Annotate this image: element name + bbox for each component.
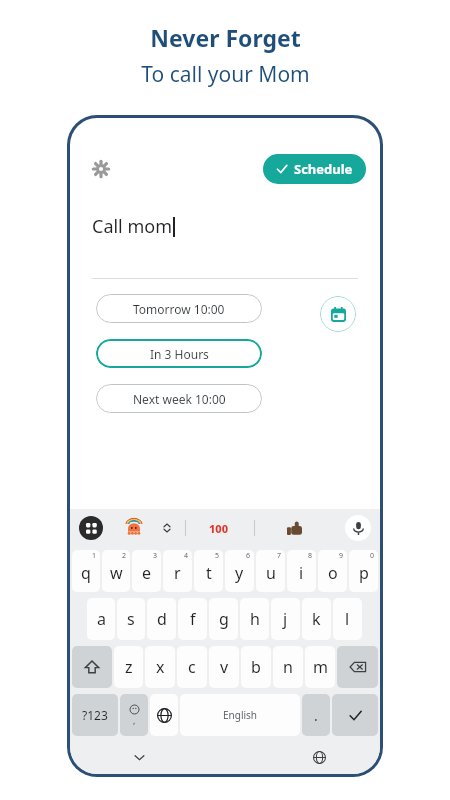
button[interactable]: a	[87, 598, 115, 640]
staticText: z	[125, 656, 133, 678]
staticText: a	[97, 608, 106, 630]
button[interactable]: ?123	[72, 694, 118, 736]
staticText: Tomorrow 10:00	[133, 301, 225, 317]
staticText: 1	[92, 551, 97, 561]
staticText: 3	[153, 551, 158, 561]
button[interactable]: h	[240, 598, 269, 640]
staticText: 6	[246, 551, 251, 561]
staticText: 0	[370, 551, 375, 561]
staticText: 8	[308, 551, 313, 561]
button[interactable]: 7	[256, 550, 285, 592]
staticText: c	[188, 656, 196, 678]
button[interactable]: Thumbs up emoji	[284, 518, 304, 538]
staticText: r	[174, 562, 181, 584]
button[interactable]: Emoji and comma	[120, 694, 148, 736]
button[interactable]: .	[302, 694, 330, 736]
staticText: Schedule	[294, 160, 353, 178]
button[interactable]: m	[305, 646, 335, 688]
button[interactable]: x	[145, 646, 175, 688]
button[interactable]: 2	[102, 550, 130, 592]
button[interactable]: Voice input	[345, 515, 371, 541]
button[interactable]: Done	[332, 694, 378, 736]
button[interactable]: In 3 Hours	[96, 339, 262, 368]
staticText: In 3 Hours	[150, 346, 209, 362]
staticText: m	[313, 656, 328, 678]
staticText: v	[220, 656, 229, 678]
button[interactable]: More	[159, 520, 175, 536]
button[interactable]: Settings	[88, 156, 114, 182]
button[interactable]: f	[178, 598, 207, 640]
staticText: l	[345, 608, 350, 630]
staticText: .	[314, 706, 318, 725]
button[interactable]: b	[241, 646, 271, 688]
staticText: 2	[122, 551, 127, 561]
staticText: k	[312, 608, 321, 630]
staticText: j	[283, 608, 288, 630]
staticText: d	[157, 608, 167, 630]
button[interactable]: 5	[194, 550, 223, 592]
staticText: f	[190, 608, 196, 630]
button[interactable]: 9	[318, 550, 347, 592]
staticText: p	[359, 562, 369, 584]
staticText: w	[110, 562, 123, 584]
button[interactable]: 8	[287, 550, 316, 592]
button[interactable]: v	[209, 646, 239, 688]
button[interactable]: Shift	[72, 646, 112, 688]
button[interactable]: j	[271, 598, 300, 640]
staticText: e	[142, 562, 152, 584]
staticText: h	[250, 608, 260, 630]
button[interactable]: s	[117, 598, 145, 640]
staticText: u	[266, 562, 276, 584]
button[interactable]: k	[302, 598, 331, 640]
button[interactable]: 1	[72, 550, 100, 592]
staticText: ,	[133, 714, 136, 726]
staticText: 5	[215, 551, 220, 561]
staticText: Never Forget	[150, 22, 301, 53]
button[interactable]: 100 emoji	[209, 521, 229, 536]
button[interactable]: Schedule	[263, 154, 366, 184]
button[interactable]: Tomorrow 10:00	[96, 294, 262, 323]
button[interactable]: 6	[225, 550, 254, 592]
button[interactable]: 0	[349, 550, 378, 592]
staticText: n	[283, 656, 293, 678]
button[interactable]: Hide keyboard	[128, 746, 150, 768]
staticText: 100	[209, 521, 229, 536]
button[interactable]: c	[177, 646, 207, 688]
staticText: Next week 10:00	[133, 391, 226, 407]
staticText: 7	[277, 551, 282, 561]
staticText: q	[81, 562, 91, 584]
staticText: ?123	[82, 707, 108, 723]
staticText: To call your Mom	[141, 60, 310, 89]
button[interactable]: 4	[163, 550, 192, 592]
staticText: English	[223, 708, 258, 722]
button[interactable]: 3	[132, 550, 161, 592]
staticText: x	[156, 656, 165, 678]
staticText: i	[299, 562, 304, 584]
staticText: 9	[339, 551, 344, 561]
button[interactable]: Change language	[150, 694, 178, 736]
button[interactable]: l	[333, 598, 362, 640]
staticText: 4	[184, 551, 189, 561]
button[interactable]: Octopus emoji	[123, 517, 145, 539]
button[interactable]: Backspace	[337, 646, 378, 688]
button[interactable]: d	[147, 598, 176, 640]
staticText: b	[251, 656, 261, 678]
button[interactable]: Toolbar	[79, 516, 103, 540]
staticText: g	[219, 608, 229, 630]
button[interactable]: Language	[308, 746, 330, 768]
staticText: t	[206, 562, 212, 584]
button[interactable]: Pick date	[320, 296, 356, 332]
staticText: Call mom	[92, 214, 172, 239]
button[interactable]: English	[180, 694, 300, 736]
staticText: s	[127, 608, 135, 630]
staticText: y	[235, 562, 244, 584]
button[interactable]: Next week 10:00	[96, 384, 262, 413]
button[interactable]: z	[114, 646, 143, 688]
button[interactable]: n	[273, 646, 303, 688]
button[interactable]: g	[209, 598, 238, 640]
staticText: o	[328, 562, 338, 584]
